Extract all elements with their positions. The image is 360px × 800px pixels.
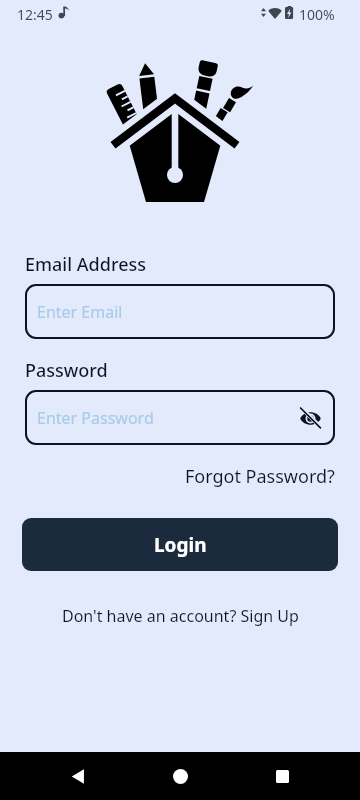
button[interactable]: Recent apps [258,752,306,800]
button[interactable]: Enter Password [25,390,335,445]
staticText: Enter Email [37,301,123,323]
staticText: 100% [299,5,335,24]
button[interactable]: Back [54,752,102,800]
staticText: Email Address [25,252,146,277]
staticText: Enter Password [37,407,154,429]
button[interactable]: Forgot Password? [185,464,335,489]
staticText: 12:45 [17,5,53,24]
staticText: Password [25,358,108,383]
button[interactable]: Enter Email [25,284,335,339]
staticText: Forgot Password? [185,464,335,489]
button[interactable]: Don't have an account? Sign Up [62,605,299,627]
button[interactable]: Home [156,752,204,800]
button[interactable]: Show password [297,405,323,431]
button[interactable]: Login [22,518,338,571]
staticText: Login [154,532,207,558]
staticText: Don't have an account? Sign Up [62,605,299,627]
